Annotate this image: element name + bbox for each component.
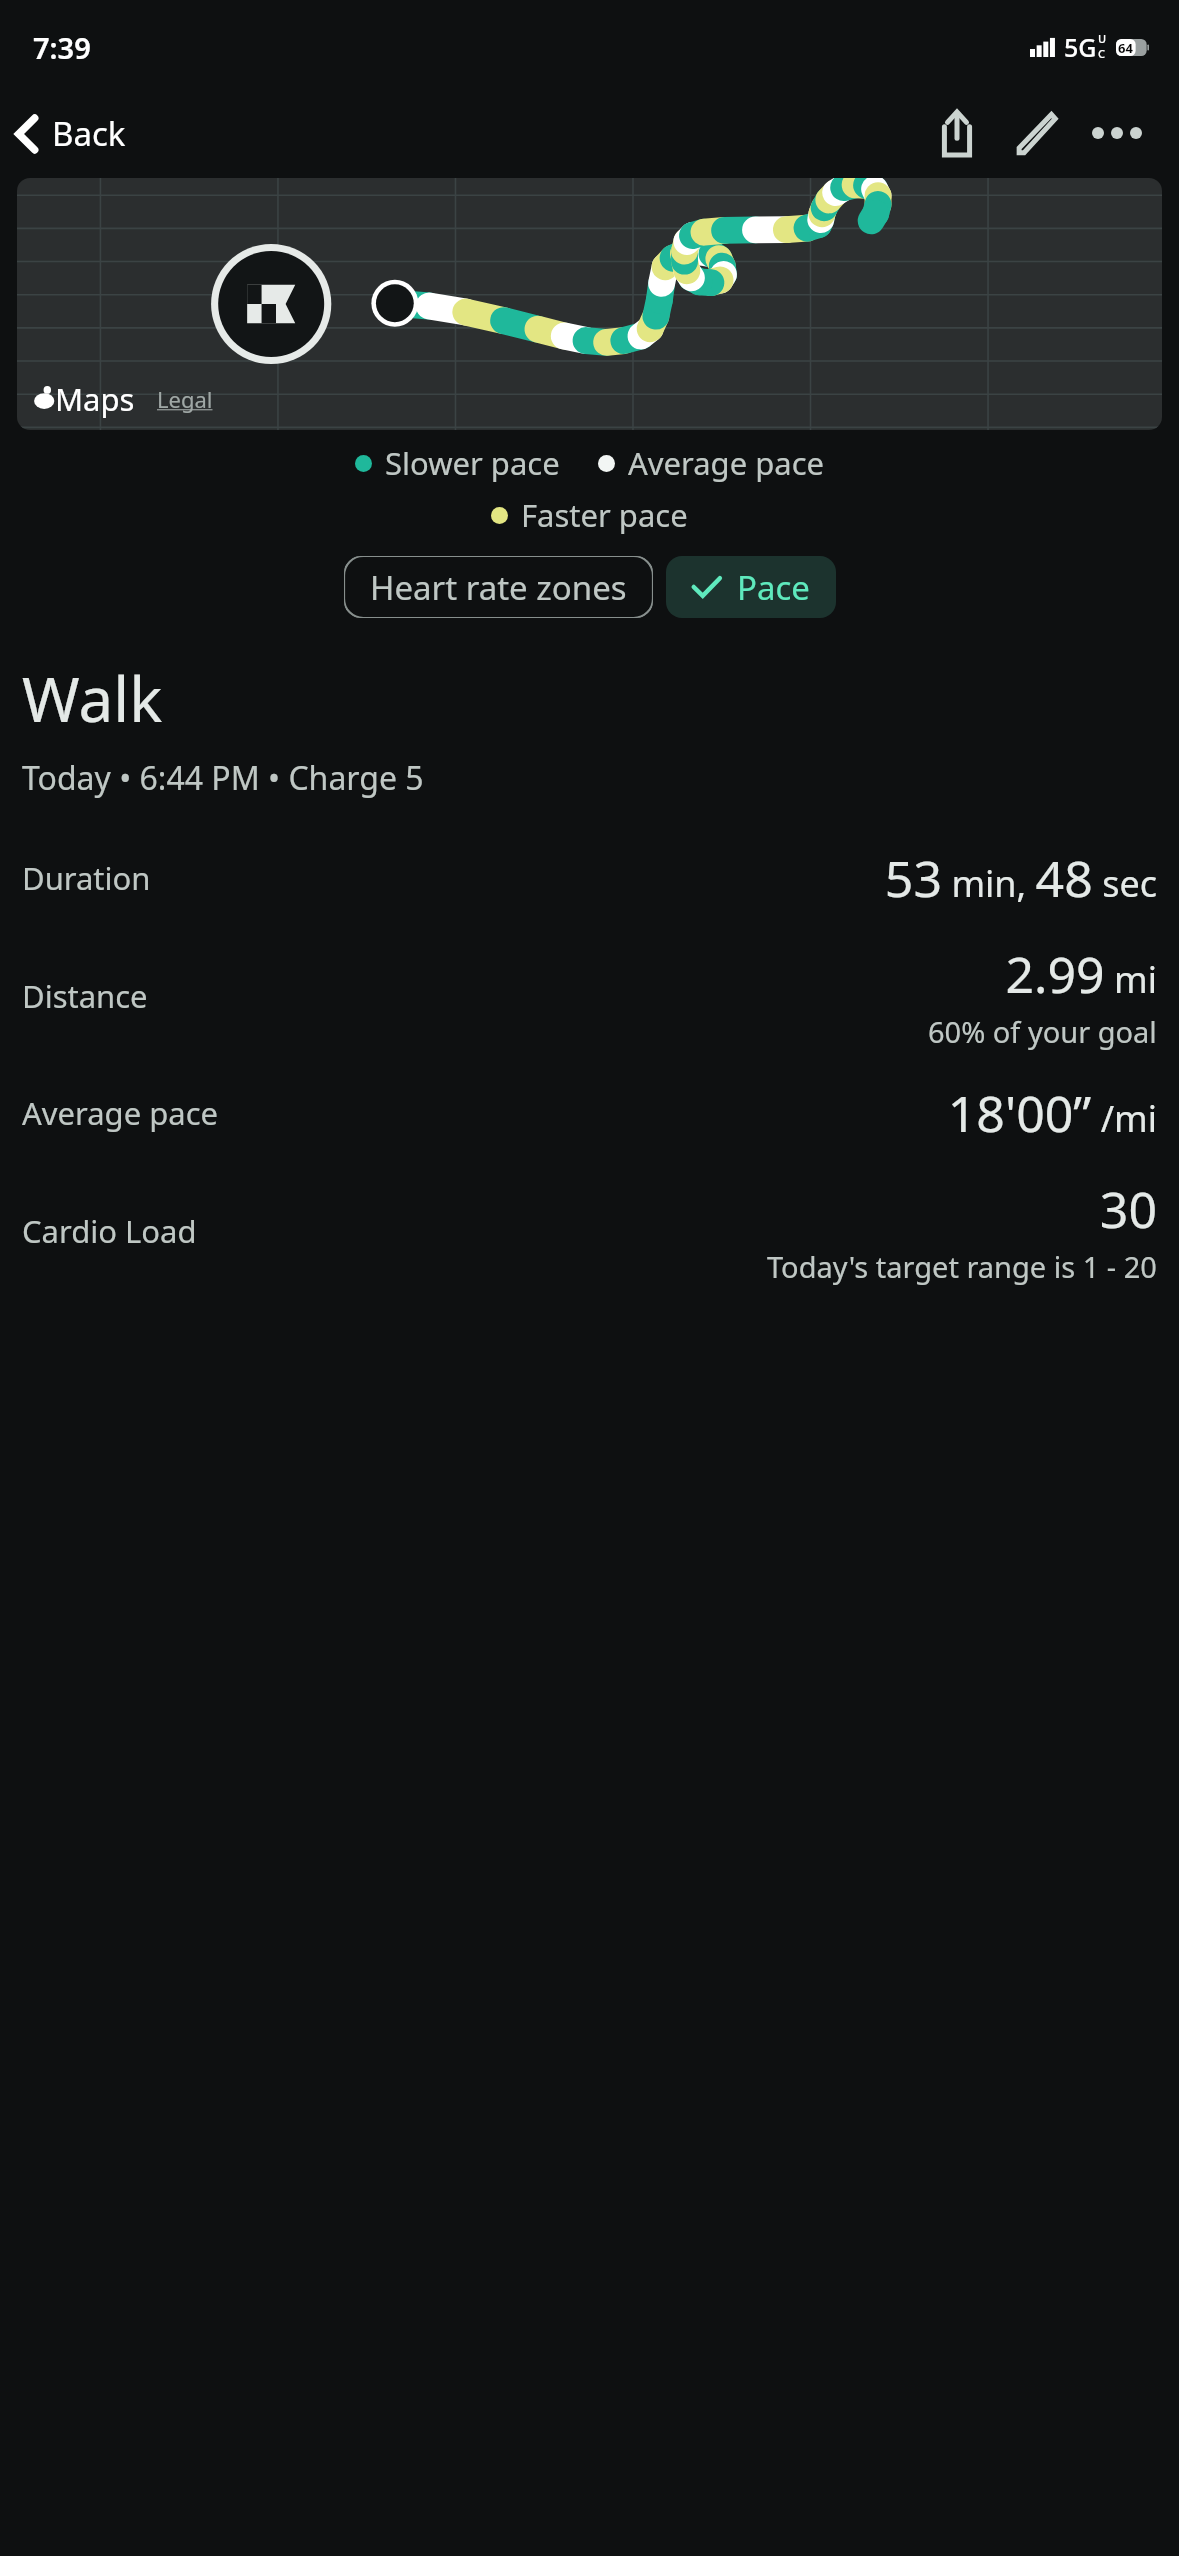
staticText: 5G	[1064, 30, 1097, 64]
staticText: Back	[52, 111, 126, 156]
staticText: U	[1098, 31, 1107, 46]
staticText: Maps	[55, 378, 135, 420]
button[interactable]: More options	[1077, 93, 1157, 173]
staticText: 30	[1099, 1175, 1157, 1243]
button[interactable]: Legal	[157, 384, 213, 414]
staticText: 18'00” /mi	[947, 1079, 1157, 1147]
button[interactable]: Back	[6, 105, 136, 162]
staticText: Distance	[22, 975, 148, 1017]
staticText: 2.99 mi	[1005, 940, 1157, 1008]
staticText: C	[1098, 46, 1105, 61]
button[interactable]: Share	[917, 93, 997, 173]
staticText: Heart rate zones	[370, 565, 627, 610]
staticText: 60% of your goal	[928, 1012, 1157, 1051]
staticText: Today's target range is 1 - 20	[767, 1247, 1157, 1286]
button[interactable]: Average pace	[0, 1065, 1179, 1161]
staticText: Slower pace	[385, 442, 560, 484]
staticText: Cardio Load	[22, 1210, 197, 1252]
staticText: Walk	[22, 656, 163, 740]
staticText: 64	[1118, 39, 1133, 56]
staticText: 53 min, 48 sec	[884, 844, 1157, 912]
staticText: Pace	[737, 565, 810, 610]
staticText: Average pace	[22, 1092, 219, 1134]
button[interactable]: Route map	[17, 178, 1162, 430]
button[interactable]: Edit	[997, 93, 1077, 173]
button[interactable]: Duration	[0, 830, 1179, 926]
staticText: Average pace	[628, 442, 825, 484]
staticText: Duration	[22, 857, 151, 899]
button[interactable]: Cardio Load	[0, 1161, 1179, 1300]
staticText: Today • 6:44 PM • Charge 5	[22, 756, 424, 800]
staticText: Faster pace	[521, 494, 688, 536]
staticText: 7:39	[33, 28, 91, 67]
button[interactable]: Heart rate zones	[344, 556, 653, 618]
button[interactable]: Distance	[0, 926, 1179, 1065]
button[interactable]: Pace	[666, 556, 836, 618]
